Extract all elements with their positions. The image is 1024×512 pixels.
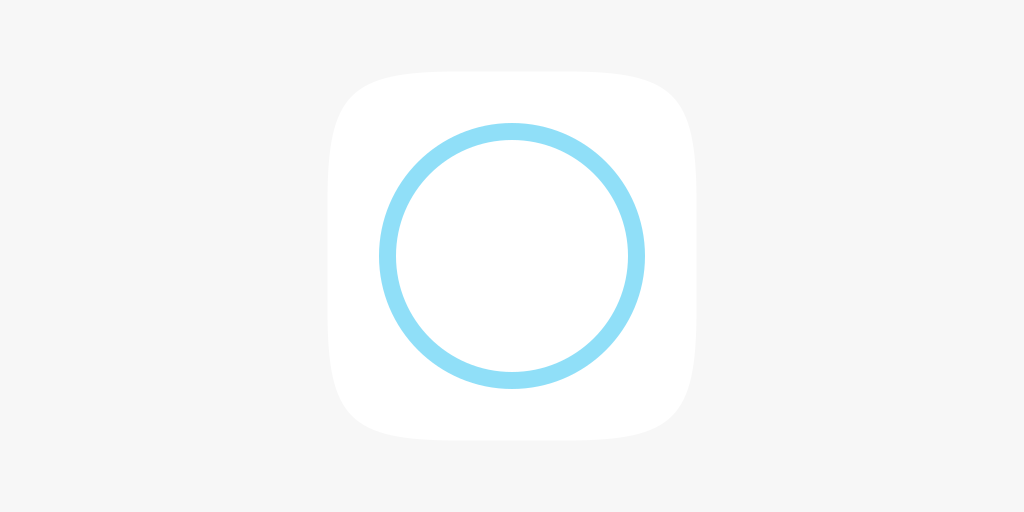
button[interactable]: App icon (327, 71, 696, 440)
